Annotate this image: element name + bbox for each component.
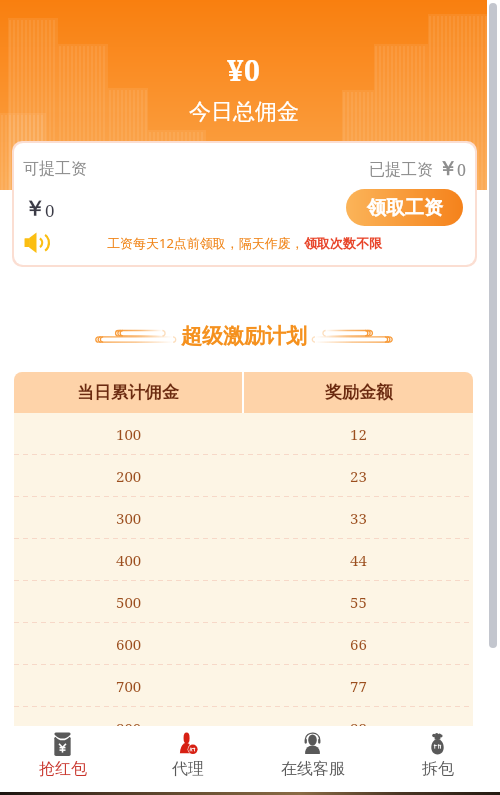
staticText: 800 bbox=[116, 718, 142, 738]
staticText: 200 bbox=[116, 466, 142, 486]
staticText: ¥ bbox=[227, 50, 244, 89]
staticText: 代理 bbox=[172, 759, 204, 779]
button[interactable]: 200 bbox=[14, 455, 473, 496]
button[interactable]: 500 bbox=[14, 581, 473, 622]
staticText: 拆包 bbox=[422, 759, 454, 779]
staticText: 0 bbox=[244, 51, 260, 89]
button[interactable]: 拆包 bbox=[375, 726, 500, 792]
staticText: 领取次数不限 bbox=[304, 235, 382, 251]
button[interactable]: 300 bbox=[14, 497, 473, 538]
staticText: 工资每天12点前领取，隔天作废， bbox=[107, 234, 304, 252]
staticText: 300 bbox=[116, 508, 142, 528]
staticText: 超级激励计划 bbox=[181, 323, 307, 349]
button[interactable]: 700 bbox=[14, 665, 473, 706]
staticText: 0 bbox=[457, 159, 466, 181]
button[interactable]: 600 bbox=[14, 623, 473, 664]
staticText: 领取工资 bbox=[367, 196, 443, 220]
staticText: 600 bbox=[116, 634, 142, 654]
staticText: 66 bbox=[350, 634, 367, 654]
staticText: 抢红包 bbox=[39, 759, 87, 779]
staticText: 700 bbox=[116, 676, 142, 696]
staticText: 77 bbox=[350, 676, 367, 696]
button[interactable]: 在线客服 bbox=[250, 726, 375, 792]
staticText: 在线客服 bbox=[281, 759, 345, 779]
staticText: 可提工资 bbox=[23, 159, 87, 179]
staticText: 已提工资 bbox=[369, 158, 438, 180]
staticText: 88 bbox=[350, 718, 367, 738]
staticText: 23 bbox=[350, 466, 367, 486]
staticText: 33 bbox=[350, 508, 367, 528]
staticText: 55 bbox=[350, 592, 367, 612]
staticText: 奖励金额 bbox=[325, 382, 393, 403]
other: Announcement bbox=[24, 231, 50, 254]
button[interactable]: 代理 bbox=[125, 726, 250, 792]
staticText: 0 bbox=[45, 199, 55, 222]
button[interactable]: 100 bbox=[14, 413, 473, 454]
staticText: 44 bbox=[350, 550, 367, 570]
staticText: 100 bbox=[116, 424, 142, 444]
staticText: 500 bbox=[116, 592, 142, 612]
button[interactable]: 抢红包 bbox=[0, 726, 125, 792]
staticText: 400 bbox=[116, 550, 142, 570]
button[interactable]: 400 bbox=[14, 539, 473, 580]
staticText: 今日总佣金 bbox=[189, 98, 299, 126]
staticText: 12 bbox=[350, 424, 367, 444]
staticText: 当日累计佣金 bbox=[77, 382, 179, 403]
staticText: ￥ bbox=[24, 196, 45, 222]
button[interactable]: 领取工资 bbox=[346, 189, 463, 226]
staticText: ￥ bbox=[438, 157, 457, 181]
button[interactable]: 800 bbox=[14, 707, 473, 748]
